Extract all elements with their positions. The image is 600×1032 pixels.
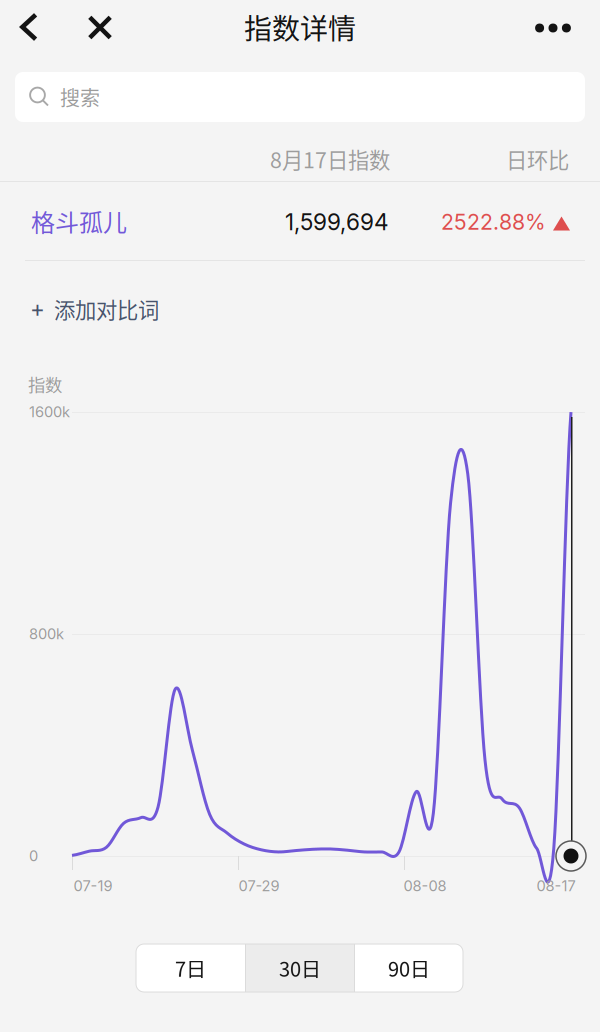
- button[interactable]: Close: [77, 5, 123, 50]
- staticText: 08-08: [403, 877, 446, 895]
- button[interactable]: 30日: [246, 944, 354, 992]
- staticText: 指数详情: [244, 7, 356, 47]
- button[interactable]: 90日: [355, 944, 463, 992]
- staticText: 7日: [175, 953, 206, 982]
- staticText: 0: [29, 847, 38, 865]
- staticText: 日环比: [506, 144, 569, 174]
- button[interactable]: 7日: [136, 944, 245, 992]
- button[interactable]: Back: [6, 6, 52, 48]
- staticText: 添加对比词: [54, 294, 159, 324]
- staticText: 2522.88%: [441, 209, 546, 235]
- staticText: 搜索: [60, 82, 100, 111]
- staticText: +: [30, 295, 45, 323]
- staticText: 格斗孤儿: [31, 204, 127, 238]
- staticText: 30日: [279, 953, 321, 982]
- button[interactable]: +: [30, 296, 270, 322]
- button[interactable]: More options: [524, 7, 582, 49]
- staticText: 1600k: [29, 403, 70, 421]
- button[interactable]: 搜索: [15, 72, 585, 122]
- staticText: 8月17日指数: [270, 144, 390, 174]
- staticText: 90日: [388, 953, 430, 982]
- staticText: 指数: [28, 371, 62, 397]
- staticText: 800k: [29, 625, 64, 643]
- staticText: 08-17: [536, 877, 575, 895]
- staticText: 07-19: [73, 877, 112, 895]
- staticText: 1,599,694: [285, 208, 389, 236]
- staticText: 07-29: [238, 877, 279, 895]
